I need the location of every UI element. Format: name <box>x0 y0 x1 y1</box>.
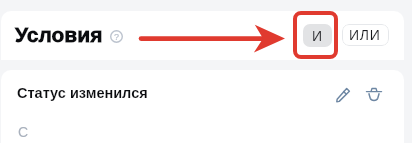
button[interactable]: Удалить <box>366 87 382 101</box>
button[interactable]: ИЛИ <box>342 24 389 46</box>
staticText: Условия <box>15 23 103 46</box>
button[interactable]: Редактировать <box>334 86 351 103</box>
staticText: Статус изменился <box>17 85 148 101</box>
button[interactable]: Справка <box>110 30 123 43</box>
staticText: ? <box>114 32 120 42</box>
staticText: ИЛИ <box>349 27 381 43</box>
staticText: И <box>312 28 323 44</box>
staticText: С <box>18 124 29 140</box>
button[interactable]: И <box>303 24 332 47</box>
